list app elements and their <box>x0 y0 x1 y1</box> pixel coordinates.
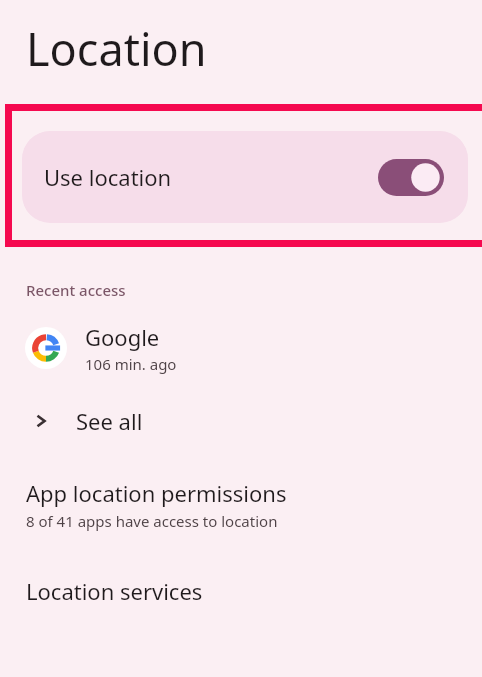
staticText: Location services <box>26 576 203 606</box>
staticText: Use location <box>44 162 172 192</box>
button[interactable]: Use location toggle, on <box>378 159 444 196</box>
staticText: Location <box>26 18 207 79</box>
button[interactable]: Google <box>0 322 482 374</box>
staticText: 8 of 41 apps have access to location <box>26 511 278 531</box>
staticText: See all <box>76 406 143 436</box>
button[interactable]: App location permissions <box>0 478 482 531</box>
button[interactable]: Location services <box>0 576 482 606</box>
button[interactable]: Use location <box>22 131 468 223</box>
staticText: 106 min. ago <box>85 354 177 374</box>
staticText: Recent access <box>26 280 126 300</box>
staticText: App location permissions <box>26 478 287 508</box>
button[interactable]: See all <box>0 398 482 444</box>
staticText: Google <box>85 322 160 352</box>
